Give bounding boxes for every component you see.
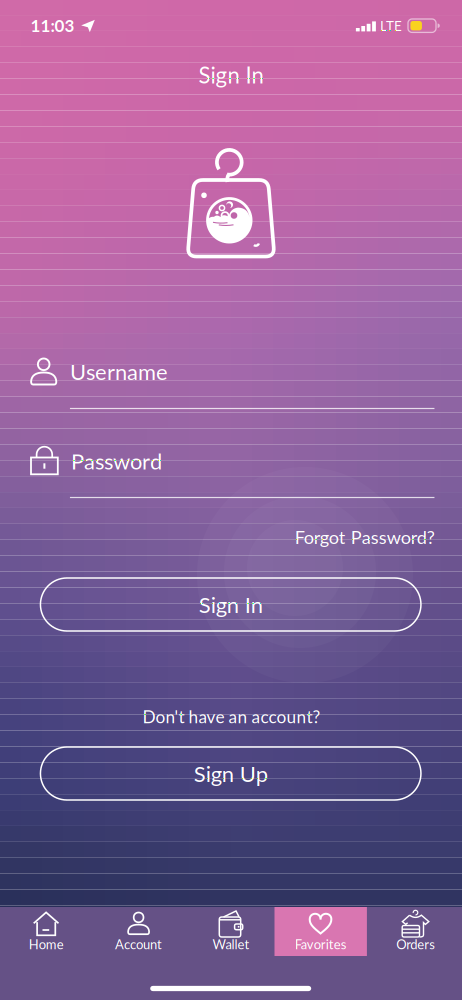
button[interactable]: Sign Up <box>40 747 421 800</box>
staticText: Forgot Password? <box>295 526 435 548</box>
staticText: Sign In <box>199 591 263 618</box>
button[interactable]: Wallet <box>185 907 277 1000</box>
staticText: LTE <box>380 18 402 34</box>
button[interactable]: Orders <box>370 907 462 1000</box>
button[interactable]: Favorites <box>277 907 370 1000</box>
button[interactable]: Sign In <box>40 578 421 631</box>
secureTextField[interactable]: Password <box>0 0 462 1000</box>
staticText: Favorites <box>295 936 347 952</box>
staticText: Password <box>71 448 162 474</box>
staticText: Sign In <box>198 62 263 88</box>
staticText: Orders <box>396 936 435 952</box>
staticText: Sign Up <box>194 760 268 787</box>
button[interactable]: Home <box>0 907 92 1000</box>
textField[interactable]: Username <box>0 0 462 1000</box>
staticText: Don't have an account? <box>142 706 320 727</box>
staticText: 11:03 <box>30 15 74 35</box>
button[interactable]: Account <box>92 907 185 1000</box>
staticText: Account <box>115 936 162 952</box>
staticText: Home <box>29 936 64 952</box>
button[interactable]: Forgot Password? <box>295 526 435 548</box>
staticText: Wallet <box>212 936 249 952</box>
staticText: Username <box>70 358 168 385</box>
